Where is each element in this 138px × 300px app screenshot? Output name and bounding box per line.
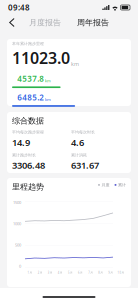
staticText: 月度 bbox=[101, 182, 109, 187]
staticText: 本年累计跑步里程 bbox=[12, 41, 44, 46]
staticText: 6485.2 bbox=[17, 92, 44, 103]
staticText: 4月 bbox=[58, 271, 63, 274]
staticText: 累计消耗 bbox=[71, 153, 87, 157]
staticText: 累计 bbox=[118, 182, 126, 187]
staticText: 14.9 bbox=[12, 136, 30, 149]
staticText: 周年报告 bbox=[77, 18, 109, 27]
staticText: 平均每次时长 bbox=[71, 130, 95, 135]
button[interactable]: 月度报告 bbox=[27, 18, 63, 27]
staticText: 09:48 bbox=[8, 2, 30, 13]
staticText: 500 bbox=[15, 242, 21, 248]
staticText: 1月 bbox=[28, 271, 33, 274]
staticText: 平均每次跑步里程 bbox=[12, 130, 44, 135]
staticText: 7月 bbox=[88, 271, 93, 274]
staticText: 8月 bbox=[98, 271, 103, 274]
staticText: 6月 bbox=[78, 271, 83, 274]
staticText: 4.6 bbox=[71, 136, 84, 149]
staticText: 10月 bbox=[117, 271, 124, 274]
staticText: 3306.48 bbox=[12, 159, 45, 171]
staticText: 3月 bbox=[48, 271, 53, 274]
staticText: 里程趋势 bbox=[12, 182, 44, 192]
staticText: 0 bbox=[19, 263, 21, 269]
staticText: 11023.0 bbox=[12, 47, 70, 68]
staticText: km bbox=[45, 78, 51, 83]
staticText: 631.67 bbox=[71, 159, 99, 171]
staticText: km bbox=[45, 97, 51, 102]
staticText: 4537.8 bbox=[17, 73, 44, 84]
staticText: km bbox=[71, 60, 79, 67]
staticText: 累计跑步时长 bbox=[12, 153, 36, 157]
button[interactable]: Back bbox=[4, 14, 20, 30]
staticText: 5月 bbox=[68, 271, 73, 274]
staticText: 月度报告 bbox=[29, 18, 61, 27]
staticText: 综合数据 bbox=[12, 116, 44, 126]
staticText: 1000 bbox=[13, 221, 21, 226]
staticText: 9月 bbox=[108, 271, 113, 274]
staticText: 1500 bbox=[13, 200, 21, 205]
button[interactable]: 周年报告 bbox=[75, 18, 111, 27]
staticText: 2月 bbox=[38, 271, 43, 274]
